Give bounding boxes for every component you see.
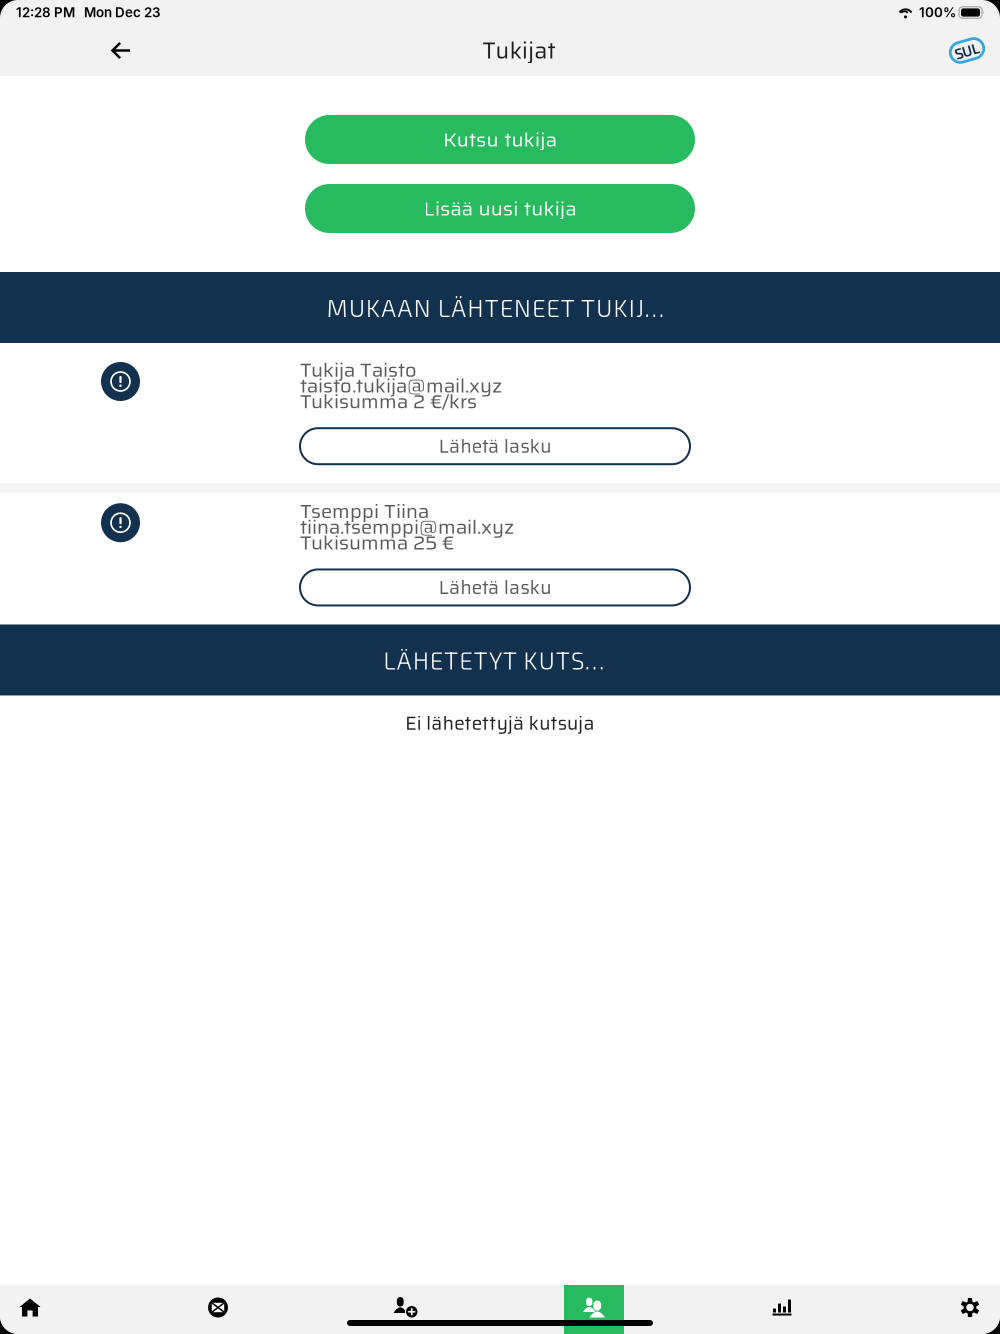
button[interactable]: Lähetä lasku — [300, 569, 690, 605]
staticText: Lähetä lasku — [439, 431, 551, 461]
button[interactable]: Home — [0, 1285, 60, 1334]
staticText: Ei lähetettyjä kutsuja — [405, 708, 595, 738]
staticText: MUKAAN LÄHTENEET TUKIJAT — [327, 293, 673, 322]
button[interactable]: Messages — [188, 1285, 248, 1334]
staticText: Mon Dec 23 — [84, 4, 160, 20]
button[interactable]: Settings — [940, 1285, 1000, 1334]
staticText: Tsemppi Tiina tiina.tsemppi@mail.xyz Tuk… — [300, 503, 514, 550]
staticText: SUL — [954, 42, 980, 59]
button[interactable]: Supporters — [564, 1285, 624, 1334]
staticText: Kutsu tukija — [443, 124, 557, 155]
staticText: Tukijat — [482, 33, 556, 68]
staticText: Lisää uusi tukija — [424, 193, 576, 224]
staticText: Tukija Taisto taisto.tukija@mail.xyz Tuk… — [300, 362, 502, 409]
staticText: 12:28 PM — [16, 4, 75, 20]
button[interactable]: Lisää uusi tukija — [305, 184, 695, 233]
button[interactable]: Lähetä lasku — [300, 428, 690, 464]
staticText: Lähetä lasku — [439, 573, 551, 602]
button[interactable]: SUL — [940, 25, 994, 75]
button[interactable]: Invite supporter — [376, 1285, 436, 1334]
button[interactable]: Back — [93, 25, 149, 75]
staticText: LÄHETETYT KUTSUT — [383, 645, 616, 674]
staticText: 100% — [919, 4, 956, 20]
button[interactable]: Kutsu tukija — [305, 115, 695, 164]
button[interactable]: Statistics — [752, 1285, 812, 1334]
